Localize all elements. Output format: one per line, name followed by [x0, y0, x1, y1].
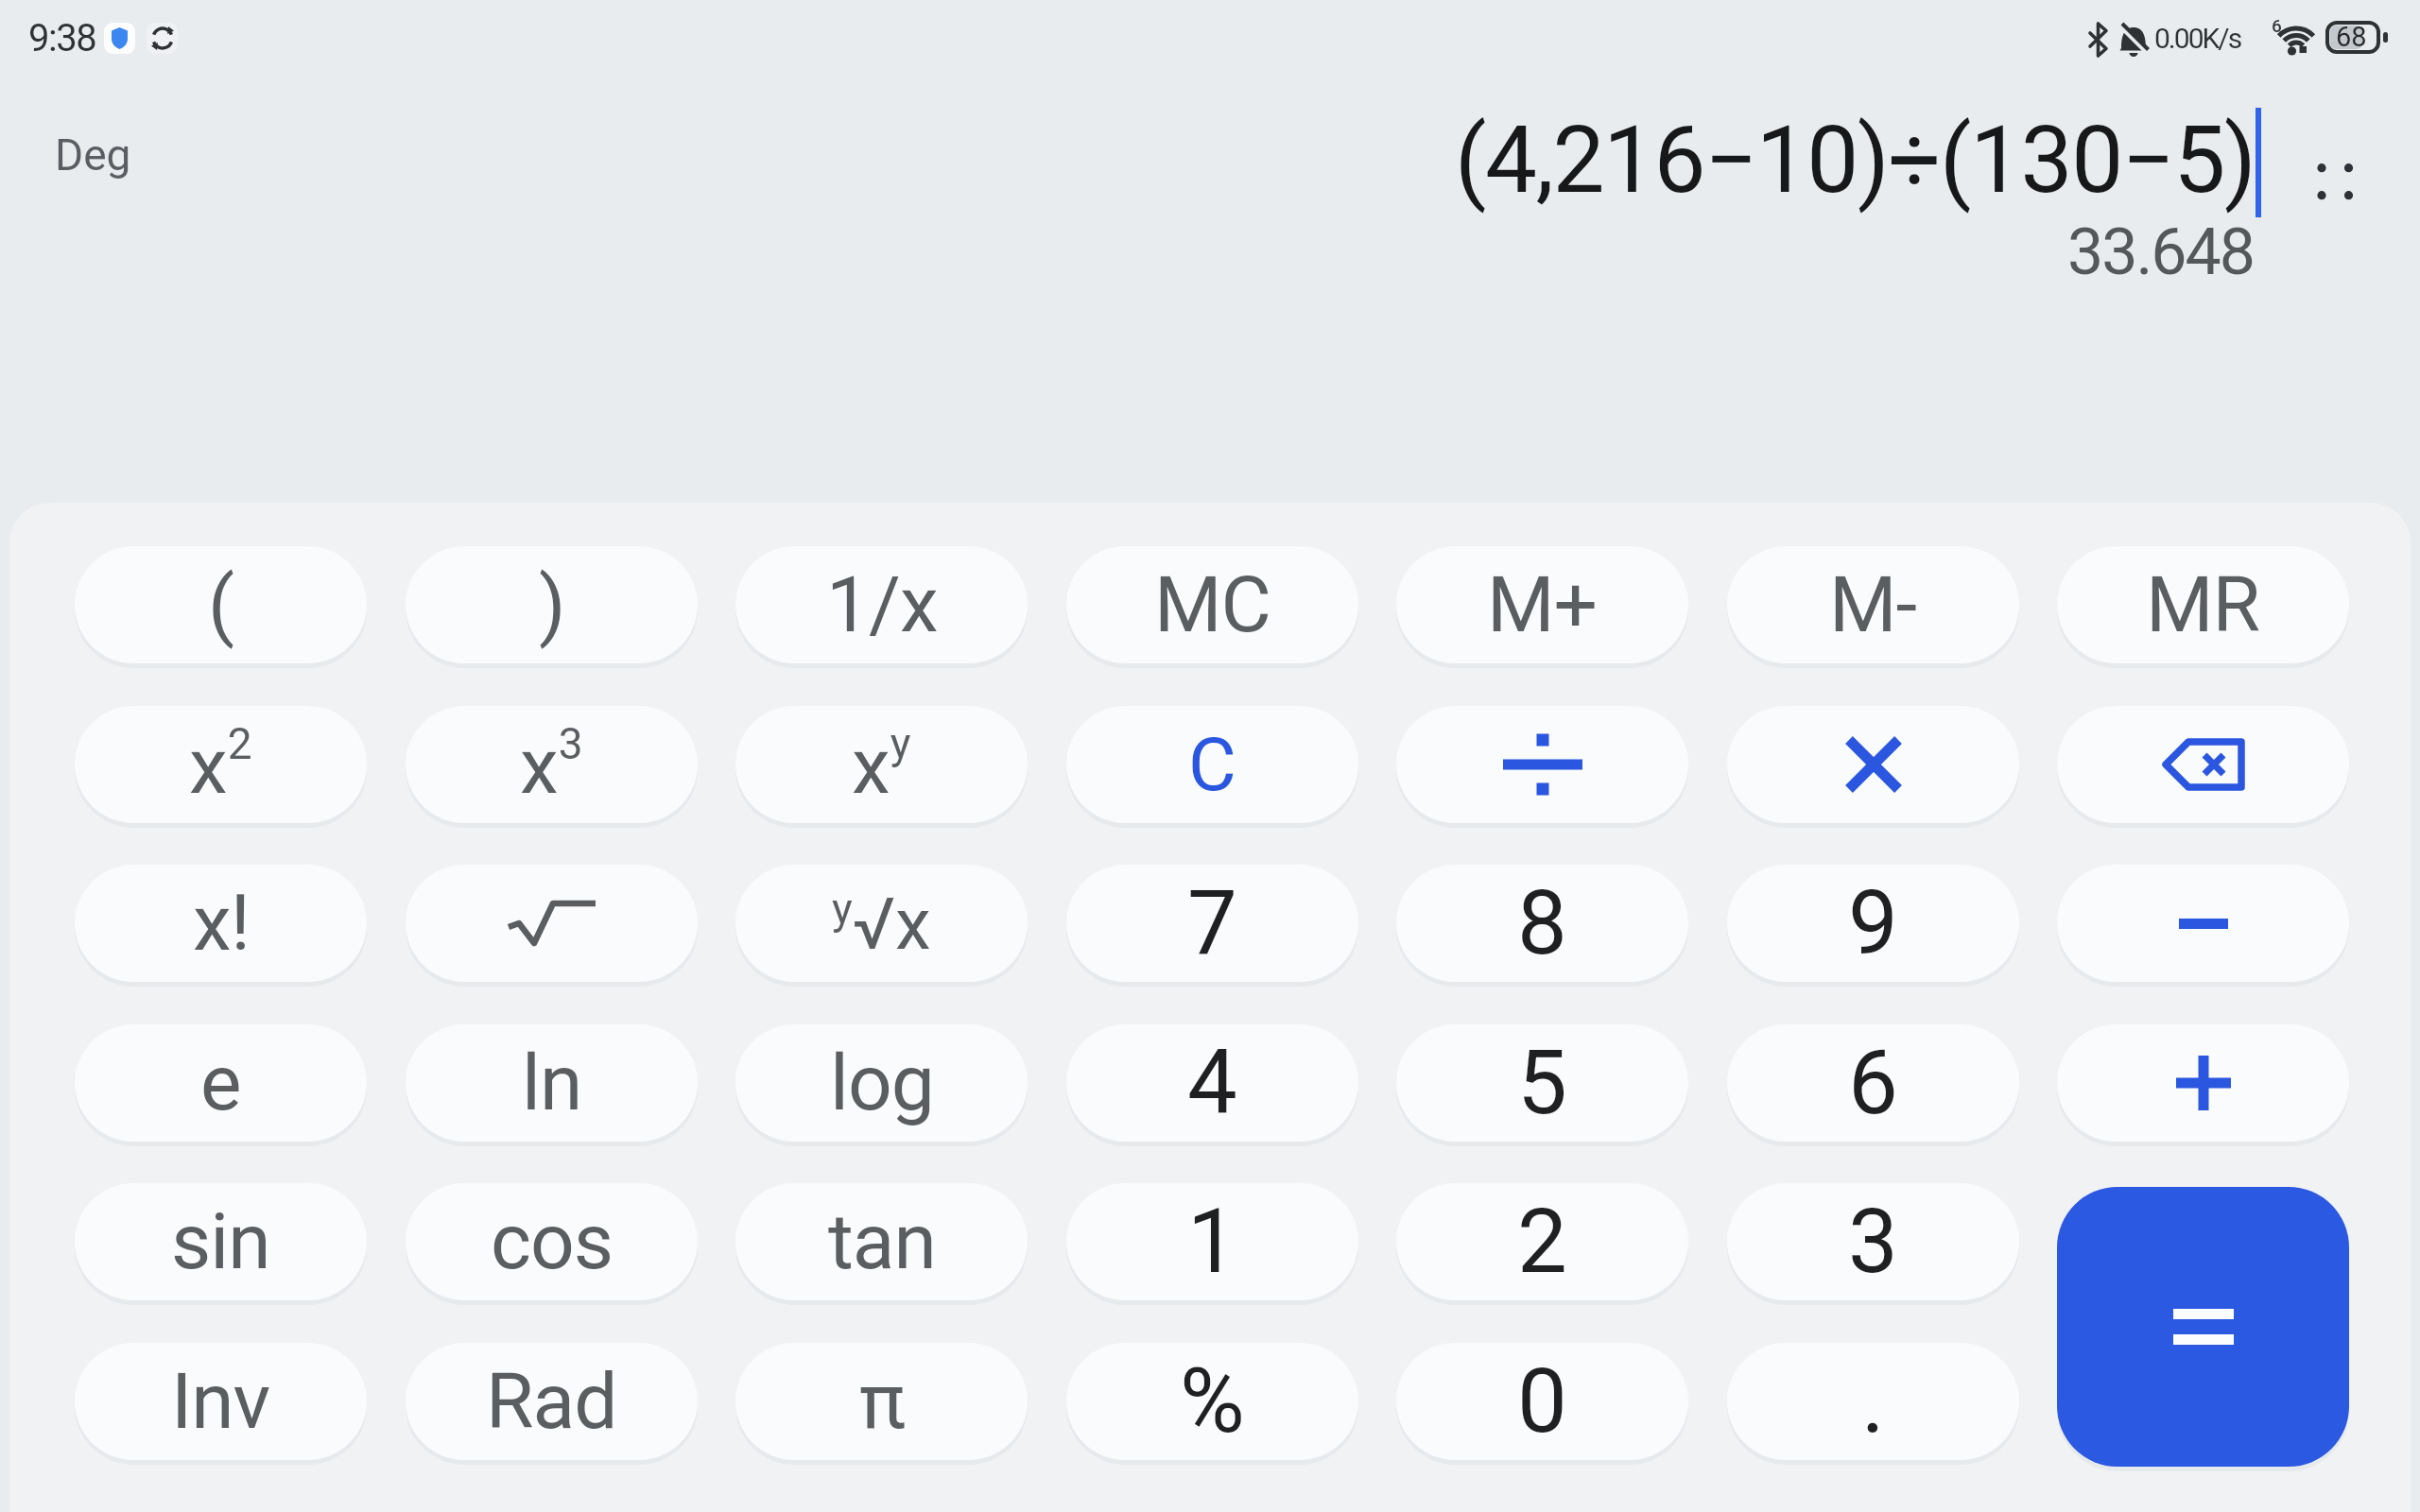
staticText: C [1188, 722, 1236, 808]
button[interactable] [2057, 865, 2349, 982]
button[interactable]: 5 [1396, 1024, 1688, 1142]
staticText: 9:38 [28, 16, 96, 60]
staticText: 3 [1848, 1190, 1898, 1294]
button[interactable]: 9 [1727, 865, 2019, 982]
staticText: M+ [1487, 559, 1598, 650]
button[interactable]: e [75, 1024, 367, 1142]
staticText: . [1861, 1349, 1885, 1453]
staticText: (4,216−10)÷(130−5) [1455, 106, 2256, 215]
staticText: sin [171, 1196, 270, 1287]
staticText: 9 [1848, 871, 1898, 975]
button[interactable]: MC [1066, 546, 1358, 663]
button[interactable] [406, 865, 698, 982]
staticText: 7 [1187, 871, 1237, 975]
staticText: MR [2146, 559, 2260, 650]
staticText: x! [193, 878, 250, 969]
button[interactable]: 1 [1066, 1183, 1358, 1300]
button[interactable]: 7 [1066, 865, 1358, 982]
staticText: 4 [1187, 1031, 1237, 1135]
button[interactable]: M+ [1396, 546, 1688, 663]
button[interactable]: C [1066, 706, 1358, 823]
staticText: % [1180, 1349, 1245, 1453]
staticText: tan [828, 1196, 936, 1287]
button[interactable]: 1/x [735, 546, 1028, 663]
staticText: 6 [1848, 1031, 1898, 1135]
staticText: π [859, 1356, 905, 1447]
button[interactable] [2057, 1187, 2349, 1467]
staticText: ( [208, 559, 234, 650]
button[interactable]: 6 [1727, 1024, 2019, 1142]
button[interactable]: y√x [735, 865, 1028, 982]
button[interactable]: log [735, 1024, 1028, 1142]
staticText: 6 [2272, 15, 2282, 36]
staticText: M- [1829, 559, 1917, 650]
button[interactable]: 0 [1396, 1343, 1688, 1460]
staticText: ln [522, 1038, 582, 1128]
staticText: 1/x [826, 559, 938, 650]
button[interactable]: 2 [1396, 1183, 1688, 1300]
staticText: Inv [171, 1356, 270, 1447]
button[interactable]: Inv [75, 1343, 367, 1460]
staticText: 2 [1517, 1190, 1567, 1294]
button[interactable] [2057, 1024, 2349, 1142]
staticText: 0 [1517, 1349, 1567, 1453]
button[interactable]: sin [75, 1183, 367, 1300]
staticText: 5 [1517, 1031, 1567, 1135]
button[interactable]: x2 [75, 706, 367, 823]
button[interactable]: 4 [1066, 1024, 1358, 1142]
button[interactable]: . [1727, 1343, 2019, 1460]
staticText: MC [1154, 559, 1270, 650]
button[interactable]: ln [406, 1024, 698, 1142]
staticText: x2 [189, 718, 252, 812]
button[interactable]: 8 [1396, 865, 1688, 982]
button[interactable]: x! [75, 865, 367, 982]
staticText: x3 [520, 718, 583, 812]
button[interactable]: π [735, 1343, 1028, 1460]
staticText: y√x [832, 882, 931, 966]
button[interactable]: MR [2057, 546, 2349, 663]
button[interactable]: ) [406, 546, 698, 663]
button[interactable]: x3 [406, 706, 698, 823]
button[interactable] [1727, 706, 2019, 823]
button[interactable]: cos [406, 1183, 698, 1300]
staticText: ) [539, 559, 565, 650]
staticText: log [830, 1038, 934, 1128]
staticText: 0.00K/s [2154, 22, 2241, 55]
button[interactable]: Rad [406, 1343, 698, 1460]
button[interactable] [2057, 706, 2349, 823]
staticText: Rad [486, 1356, 617, 1447]
button[interactable]: ( [75, 546, 367, 663]
button[interactable]: tan [735, 1183, 1028, 1300]
button[interactable]: M- [1727, 546, 2019, 663]
staticText: cos [491, 1196, 614, 1287]
button[interactable]: % [1066, 1343, 1358, 1460]
staticText: 33.648 [2067, 215, 2255, 290]
staticText: 1 [1187, 1190, 1237, 1294]
staticText: xy [852, 718, 911, 812]
staticText: e [200, 1038, 241, 1128]
button[interactable] [1396, 706, 1688, 823]
staticText: 8 [1517, 871, 1567, 975]
button[interactable]: xy [735, 706, 1028, 823]
staticText: Deg [55, 129, 131, 180]
staticText: 68 [2336, 21, 2367, 53]
button[interactable]: 3 [1727, 1183, 2019, 1300]
